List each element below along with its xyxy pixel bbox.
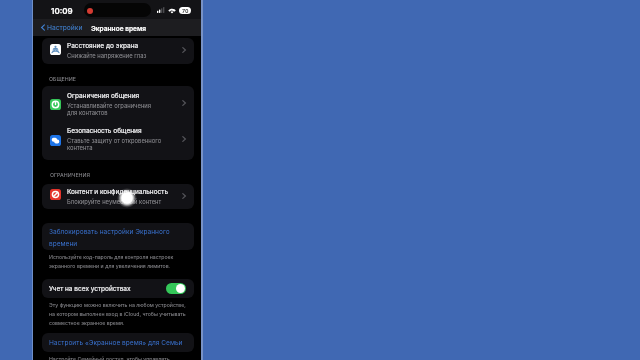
button[interactable]: Учет на всех устройствах — [166, 283, 186, 294]
staticText: Настроить «Экранное время» для Семьи — [49, 339, 183, 347]
staticText: ОБЩЕНИЕ — [49, 76, 76, 82]
button[interactable] — [42, 223, 194, 250]
button[interactable] — [42, 184, 194, 209]
staticText: Безопасность общения — [67, 127, 142, 135]
staticText: Учет на всех устройствах — [49, 285, 131, 293]
staticText: 10:09 — [51, 6, 73, 16]
staticText: Блокируйте неуместный контент — [67, 198, 162, 205]
button[interactable] — [42, 38, 194, 64]
button[interactable] — [42, 333, 194, 352]
staticText: Используйте код-пароль для контроля наст… — [49, 254, 174, 269]
button[interactable] — [42, 86, 194, 123]
staticText: Снижайте напряжение глаз — [67, 52, 147, 59]
button[interactable] — [42, 279, 194, 298]
staticText: Ограничения общения — [67, 92, 140, 100]
staticText: Настройки — [47, 24, 83, 32]
staticText: ОГРАНИЧЕНИЯ — [50, 172, 90, 178]
staticText: Ставьте защиту от откровенного контента — [67, 137, 162, 152]
staticText: Заблокировать настройки Экранного времен… — [49, 228, 170, 248]
button[interactable]: Настройки — [40, 20, 84, 35]
staticText: Эту функцию можно включить на любом устр… — [49, 302, 186, 326]
button[interactable] — [42, 123, 194, 160]
staticText: Расстояние до экрана — [67, 42, 139, 50]
staticText: Устанавливайте ограничения для контактов — [67, 102, 152, 117]
staticText: Настройте Семейный доступ, чтобы управля… — [49, 356, 170, 360]
staticText: Контент и конфиденциальность — [67, 188, 169, 196]
staticText: 70 — [182, 8, 189, 14]
staticText: Экранное время — [91, 25, 147, 33]
